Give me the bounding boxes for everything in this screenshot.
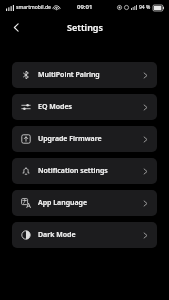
button[interactable]: EQ Modes <box>12 94 157 120</box>
button[interactable]: Dark Mode <box>12 222 157 248</box>
button[interactable]: Back <box>6 17 26 37</box>
staticText: App Language <box>38 198 142 208</box>
staticText: Notification settings <box>38 166 142 176</box>
staticText: smartmobil.de <box>16 4 51 11</box>
staticText: Dark Mode <box>38 230 142 240</box>
button[interactable]: MultiPoint Pairing <box>12 62 157 88</box>
staticText: MultiPoint Pairing <box>38 70 142 80</box>
staticText: 09:01 <box>77 3 93 11</box>
staticText: EQ Modes <box>38 102 142 112</box>
staticText: 94 % <box>139 4 151 11</box>
button[interactable]: Upgrade Firmware <box>12 126 157 152</box>
staticText: Settings <box>67 21 103 33</box>
button[interactable]: Notification settings <box>12 158 157 184</box>
staticText: Upgrade Firmware <box>38 134 142 144</box>
button[interactable]: App Language <box>12 190 157 216</box>
